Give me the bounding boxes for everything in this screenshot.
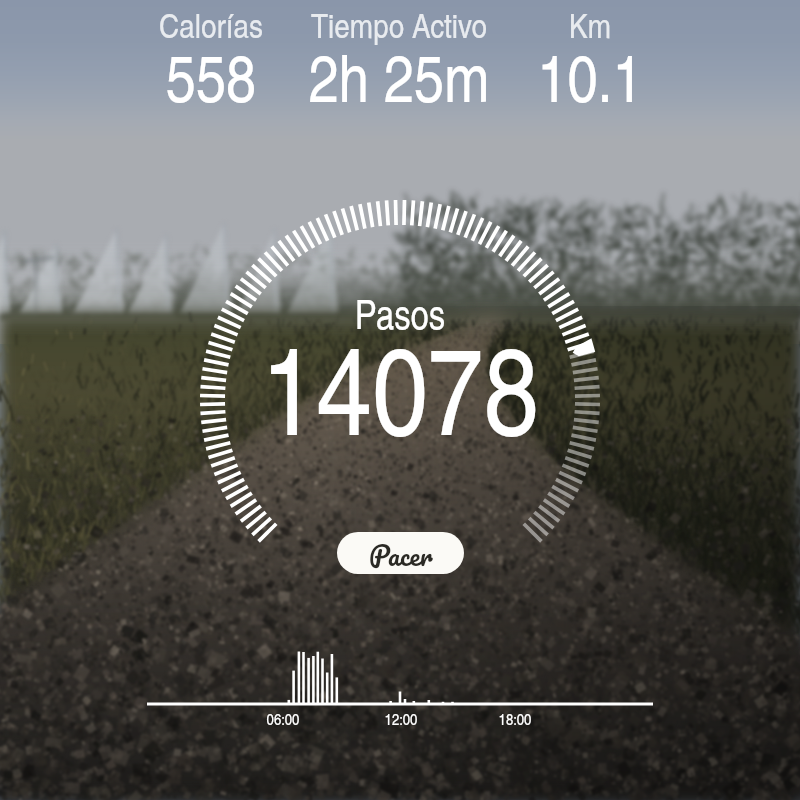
staticText: 06:00	[238, 708, 328, 730]
button[interactable]: 06:00	[238, 708, 328, 730]
staticText: 14078	[240, 302, 560, 469]
staticText: Pasos	[240, 285, 560, 340]
staticText: 2h 25m	[284, 30, 514, 120]
staticText: Km	[475, 1, 705, 48]
staticText: Calorías	[96, 1, 326, 48]
button[interactable]: Calorías	[91, 0, 331, 112]
staticText: 558	[96, 30, 326, 120]
staticText: 18:00	[470, 708, 560, 730]
button[interactable]: Km	[470, 0, 710, 112]
staticText: Pacer	[369, 532, 433, 574]
button[interactable]: 12:00	[356, 708, 446, 730]
staticText: Tiempo Activo	[284, 1, 514, 48]
staticText: 12:00	[356, 708, 446, 730]
button[interactable]: Tiempo Activo	[279, 0, 519, 112]
staticText: 10.1	[475, 30, 705, 120]
button[interactable]: 18:00	[470, 708, 560, 730]
button[interactable]: Pacer	[337, 532, 464, 574]
